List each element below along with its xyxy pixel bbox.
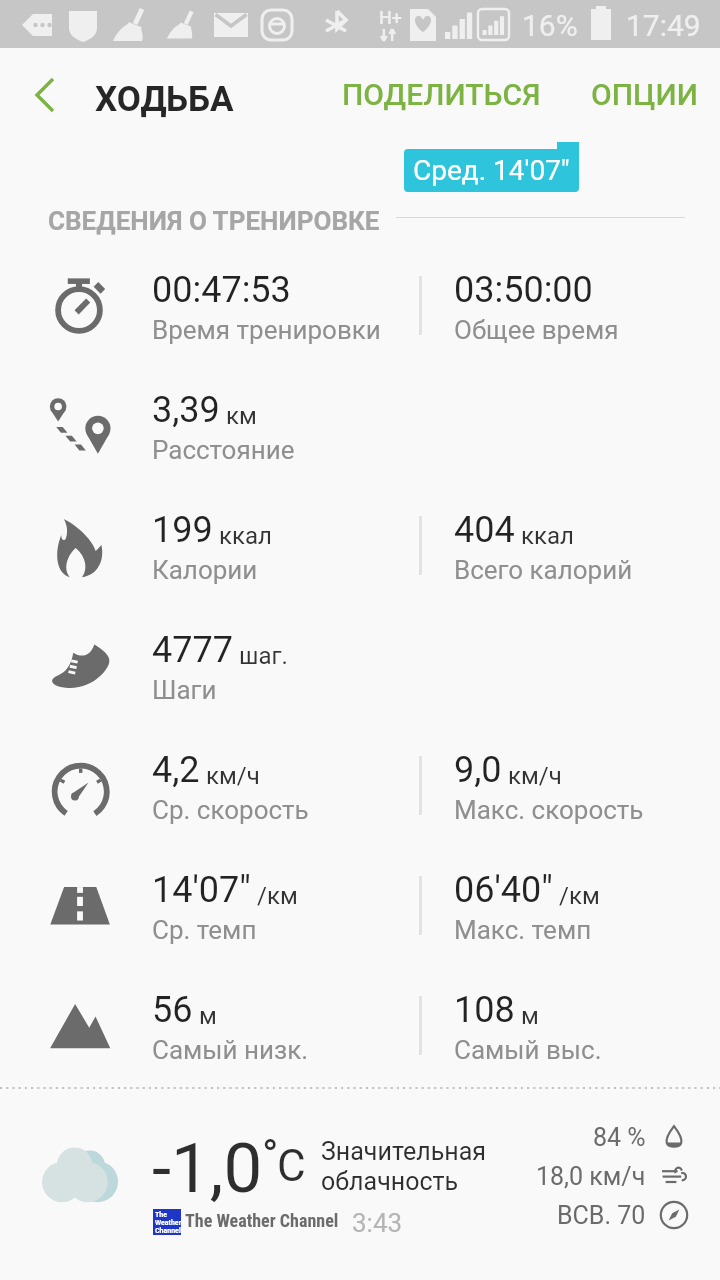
staticText: м [521, 1002, 539, 1030]
staticText: 56 [152, 989, 193, 1031]
button[interactable]: 3,39 [0, 368, 720, 488]
staticText: Общее время [454, 315, 619, 345]
staticText: /км [257, 882, 298, 910]
staticText: СВЕДЕНИЯ О ТРЕНИРОВКЕ [48, 206, 380, 236]
button[interactable]: 199 [0, 488, 720, 608]
staticText: Время тренировки [152, 315, 381, 345]
staticText: Всего калорий [454, 555, 633, 585]
staticText: 199 [152, 509, 213, 551]
button[interactable]: Сред. 14'07" [404, 149, 579, 192]
staticText: 9,0 [454, 749, 502, 791]
button[interactable]: -1,0 [0, 1082, 720, 1280]
staticText: км/ч [508, 762, 562, 790]
staticText: 84 % [593, 1123, 646, 1152]
button[interactable]: 4777 [0, 608, 720, 728]
staticText: ВСВ. 70 [557, 1201, 646, 1230]
button[interactable]: 56 [0, 968, 720, 1088]
staticText: ОПЦИИ [591, 77, 698, 112]
staticText: ккал [521, 522, 574, 550]
staticText: Ср. скорость [152, 795, 309, 825]
staticText: The Weather Channel [155, 1211, 182, 1235]
staticText: км [226, 402, 257, 430]
staticText: Самый низк. [152, 1035, 309, 1065]
staticText: -1,0 [152, 1128, 263, 1209]
button[interactable]: Назад [13, 63, 79, 129]
staticText: 03:50:00 [454, 269, 593, 311]
button[interactable]: 14'07" [0, 848, 720, 968]
staticText: 14'07" [152, 869, 251, 911]
staticText: 3:43 [352, 1208, 403, 1238]
staticText: Расстояние [152, 435, 295, 465]
staticText: 17:49 [626, 8, 701, 43]
staticText: Макс. скорость [454, 795, 644, 825]
staticText: ккал [219, 522, 272, 550]
staticText: 4,2 [152, 749, 200, 791]
staticText: 00:47:53 [152, 269, 291, 311]
staticText: 3,39 [152, 389, 220, 431]
staticText: Калории [152, 555, 258, 585]
staticText: H+ [379, 7, 402, 28]
staticText: Макс. темп [454, 915, 592, 945]
staticText: 18,0 км/ч [536, 1162, 646, 1191]
staticText: ПОДЕЛИТЬСЯ [342, 77, 541, 112]
staticText: шаг. [239, 642, 288, 670]
staticText: Самый выс. [454, 1035, 602, 1065]
staticText: /км [559, 882, 600, 910]
staticText: м [199, 1002, 217, 1030]
staticText: ° [262, 1130, 279, 1182]
staticText: 16% [522, 8, 578, 43]
button[interactable]: ПОДЕЛИТЬСЯ [332, 63, 551, 126]
staticText: 4777 [152, 629, 233, 671]
staticText: 06'40" [454, 869, 553, 911]
staticText: км/ч [206, 762, 260, 790]
staticText: Сред. 14'07" [413, 154, 570, 187]
staticText: 108 [454, 989, 515, 1031]
staticText: Ср. темп [152, 915, 257, 945]
button[interactable]: 00:47:53 [0, 248, 720, 368]
staticText: ХОДЬБА [95, 79, 234, 120]
staticText: Значительная облачность [321, 1137, 486, 1196]
staticText: 404 [454, 509, 515, 551]
staticText: C [277, 1140, 306, 1192]
button[interactable]: ОПЦИИ [581, 63, 708, 126]
staticText: Шаги [152, 675, 217, 705]
button[interactable]: 4,2 [0, 728, 720, 848]
staticText: The Weather Channel [185, 1210, 339, 1231]
